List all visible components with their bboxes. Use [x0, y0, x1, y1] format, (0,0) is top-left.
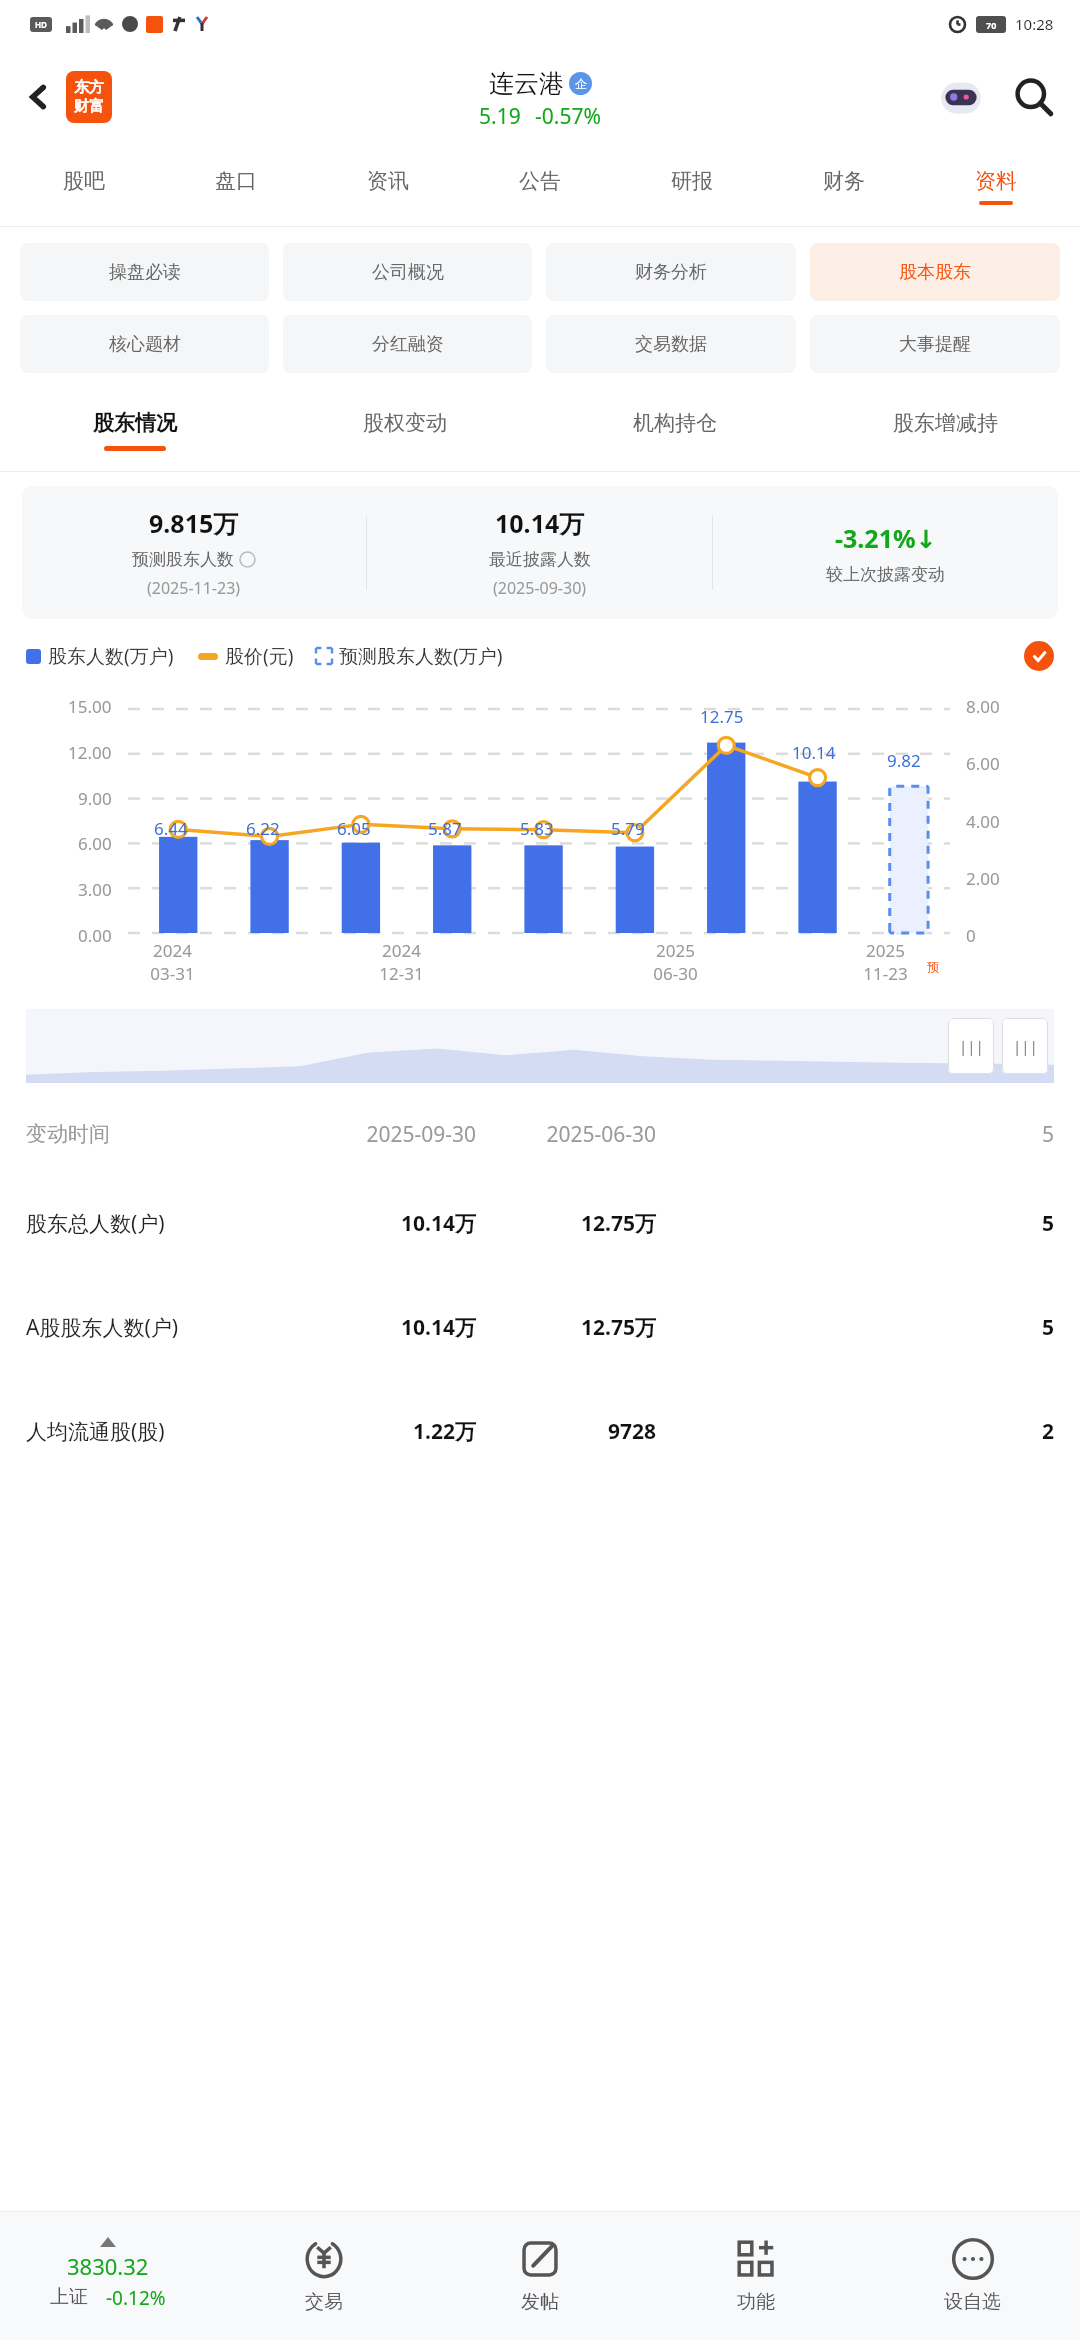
staticText: 9728: [476, 1417, 656, 1446]
staticText: 较上次披露变动: [826, 564, 945, 585]
staticText: 6.00: [966, 752, 1000, 775]
staticText: 2024 12-31: [379, 939, 424, 985]
button[interactable]: 3830.32: [0, 2212, 216, 2340]
staticText: 上证: [50, 2285, 88, 2309]
staticText: 股东总人数(户): [26, 1209, 276, 1238]
staticText: 1.22万: [276, 1417, 476, 1446]
staticText: 6.05: [337, 817, 371, 840]
staticText: 资料: [975, 168, 1017, 194]
staticText: 财务分析: [635, 261, 707, 284]
button[interactable]: 大事提醒: [810, 315, 1060, 373]
button[interactable]: Range handle: [948, 1018, 994, 1074]
button[interactable]: Toggle forecast: [1024, 641, 1054, 671]
button[interactable]: 财务: [768, 146, 920, 226]
button[interactable]: Range handle: [1002, 1018, 1048, 1074]
staticText: 10.14万: [276, 1313, 476, 1342]
staticText: 东方: [74, 78, 104, 97]
staticText: 股本股东: [899, 261, 971, 284]
button[interactable]: 分红融资: [283, 315, 532, 373]
staticText: 15.00: [68, 695, 112, 718]
button[interactable]: 股东增减持: [810, 389, 1080, 471]
staticText: 0: [966, 924, 976, 947]
staticText: (2025-11-23): [147, 577, 241, 599]
staticText: 70: [986, 19, 997, 31]
staticText: -0.12%: [106, 2285, 166, 2311]
button[interactable]: 股本股东: [810, 243, 1060, 301]
button[interactable]: 资料: [920, 146, 1072, 226]
staticText: 2024 03-31: [150, 939, 195, 985]
staticText: 股东人数(万户): [48, 643, 174, 669]
staticText: 2025-09-30: [276, 1120, 476, 1149]
staticText: 交易: [305, 2290, 343, 2314]
staticText: 2.00: [966, 867, 1000, 890]
button[interactable]: 核心题材: [20, 315, 269, 373]
staticText: 大事提醒: [899, 333, 971, 356]
staticText: 6.22: [246, 817, 280, 840]
button[interactable]: 交易数据: [546, 315, 796, 373]
staticText: 发帖: [521, 2290, 559, 2314]
staticText: 变动时间: [26, 1121, 276, 1147]
button[interactable]: 研报: [616, 146, 768, 226]
staticText: 8.00: [966, 695, 1000, 718]
staticText: 2025 11-23: [863, 939, 908, 985]
staticText: 机构持仓: [633, 410, 717, 436]
staticText: 操盘必读: [109, 261, 181, 284]
staticText: 人均流通股(股): [26, 1417, 276, 1446]
staticText: 预: [927, 959, 939, 974]
button[interactable]: 财务分析: [546, 243, 796, 301]
staticText: 最近披露人数: [489, 549, 591, 570]
staticText: 5.87: [428, 817, 462, 840]
button[interactable]: 股吧: [8, 146, 160, 226]
button[interactable]: 功能: [648, 2212, 864, 2340]
staticText: (2025-09-30): [493, 577, 587, 599]
staticText: 5: [656, 1313, 1054, 1342]
button[interactable]: 机构持仓: [540, 389, 810, 471]
staticText: 股价(元): [225, 643, 294, 669]
staticText: HD: [35, 19, 47, 30]
staticText: 5.83: [520, 817, 554, 840]
button[interactable]: 股权变动: [270, 389, 540, 471]
button[interactable]: 发帖: [432, 2212, 648, 2340]
button[interactable]: 公告: [464, 146, 616, 226]
button[interactable]: 东方财富: [66, 71, 112, 123]
staticText: 功能: [737, 2290, 775, 2314]
staticText: 资讯: [367, 168, 409, 194]
staticText: 10.14: [792, 741, 836, 764]
button[interactable]: 公司概况: [283, 243, 532, 301]
staticText: 5.79: [611, 817, 645, 840]
button[interactable]: 盘口: [160, 146, 312, 226]
staticText: 9.82: [887, 749, 921, 772]
button[interactable]: 设自选: [864, 2212, 1080, 2340]
button[interactable]: 资讯: [312, 146, 464, 226]
staticText: A股股东人数(户): [26, 1313, 276, 1342]
staticText: 4.00: [966, 810, 1000, 833]
staticText: 6.00: [78, 832, 112, 855]
staticText: 交易数据: [635, 333, 707, 356]
staticText: 财务: [823, 168, 865, 194]
staticText: -0.57%: [535, 102, 601, 131]
staticText: 核心题材: [109, 333, 181, 356]
staticText: 6.44: [154, 817, 188, 840]
staticText: 12.75: [700, 705, 744, 728]
staticText: 10:28: [1015, 14, 1054, 34]
staticText: 股东情况: [93, 410, 177, 436]
staticText: 12.75万: [476, 1209, 656, 1238]
staticText: 设自选: [944, 2290, 1001, 2314]
staticText: 2025-06-30: [476, 1120, 656, 1149]
button[interactable]: Search: [1006, 69, 1062, 125]
staticText: |||: [1013, 1036, 1038, 1056]
button[interactable]: Back: [12, 70, 66, 124]
button[interactable]: 操盘必读: [20, 243, 269, 301]
staticText: 5: [656, 1120, 1054, 1149]
staticText: 0.00: [78, 924, 112, 947]
staticText: 财富: [74, 97, 104, 116]
staticText: |||: [959, 1036, 984, 1056]
staticText: 10.14万: [276, 1209, 476, 1238]
staticText: 股东增减持: [893, 410, 998, 436]
staticText: 研报: [671, 168, 713, 194]
button[interactable]: 股东情况: [0, 389, 270, 471]
button[interactable]: 交易: [216, 2212, 432, 2340]
button[interactable]: AI assistant: [932, 68, 990, 126]
staticText: 股吧: [63, 168, 105, 194]
staticText: 3.00: [78, 878, 112, 901]
